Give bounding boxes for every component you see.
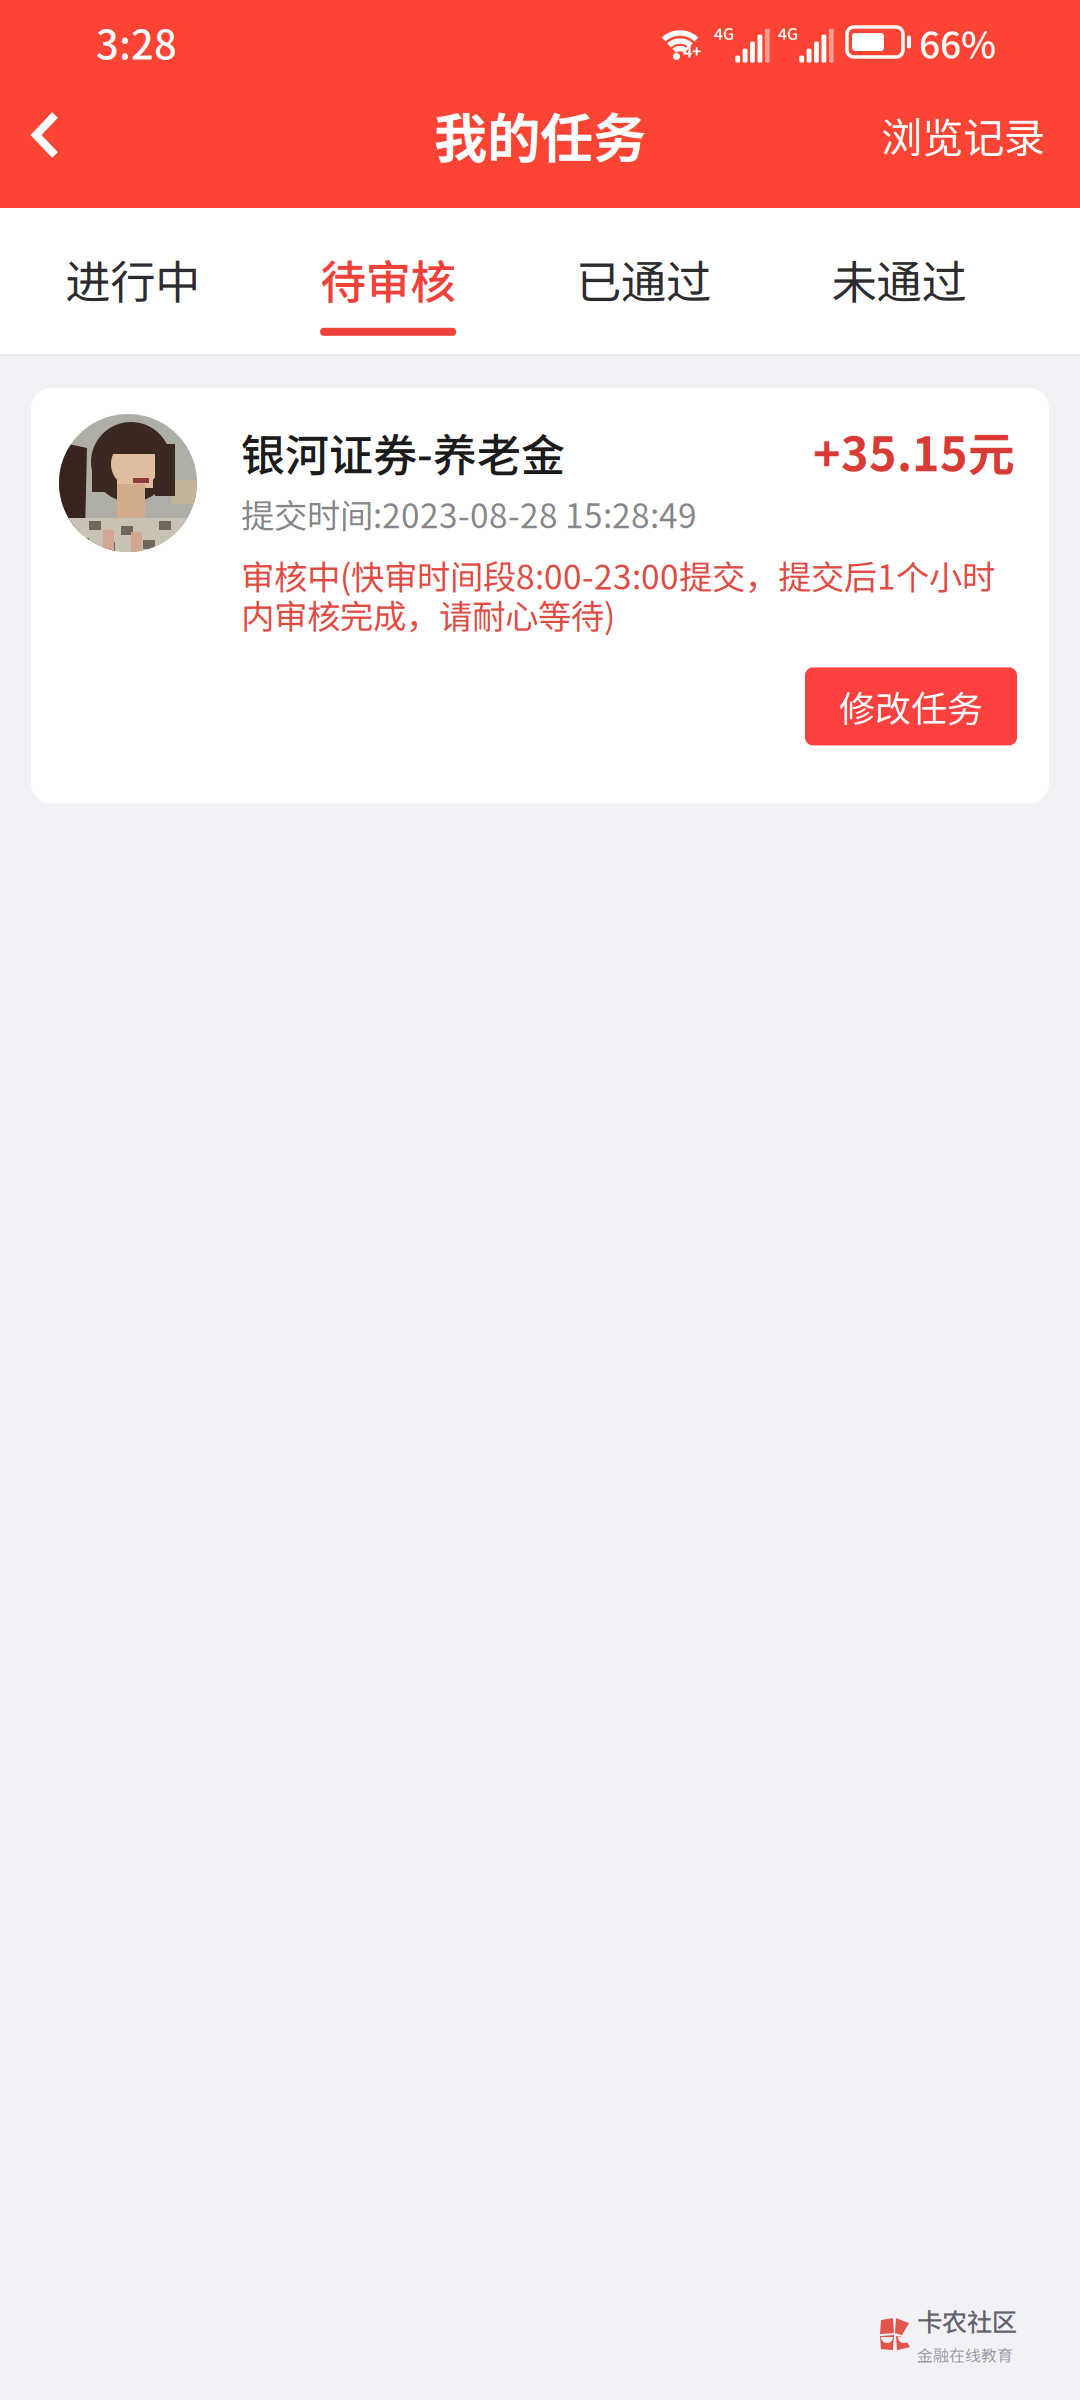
button[interactable]: 待审核 [260,208,516,356]
staticText: 银河证券-养老金 [241,420,565,484]
button[interactable]: 已通过 [516,208,771,356]
staticText: 已通过 [576,246,711,312]
button[interactable]: 浏览记录 [857,95,1080,197]
staticText: 金融在线教育 [917,2343,1013,2366]
button[interactable]: 修改任务 [805,667,1017,745]
button[interactable]: 未通过 [771,208,1027,356]
staticText: 审核中(快审时间段8:00-23:00提交，提交后1个小时内审核完成，请耐心等待… [241,551,995,638]
staticText: 进行中 [65,246,200,312]
staticText: 未通过 [831,246,966,312]
staticText: 4G [778,21,798,45]
staticText: 浏览记录 [881,105,1045,165]
button[interactable]: Back [0,103,88,189]
staticText: 4+ [683,39,701,62]
staticText: 我的任务 [434,96,646,173]
button[interactable]: 银河证券-养老金 [31,388,1049,803]
button[interactable]: 进行中 [5,208,260,356]
staticText: 修改任务 [839,680,983,732]
staticText: 卡农社区 [917,2302,1017,2339]
staticText: 66% [919,15,996,69]
staticText: 4G [714,21,734,45]
staticText: 待审核 [321,246,456,312]
staticText: +35.15元 [813,417,1015,485]
staticText: 提交时间:2023-08-28 15:28:49 [241,490,697,538]
staticText: 3:28 [96,13,177,71]
